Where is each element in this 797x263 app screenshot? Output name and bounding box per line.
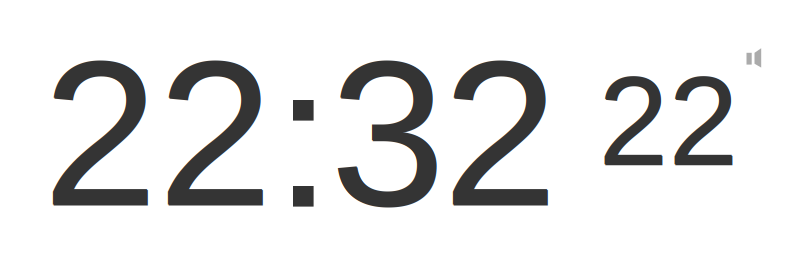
staticText: 2 <box>442 17 557 248</box>
button[interactable]: Sound <box>746 48 761 68</box>
staticText: 22 <box>599 52 739 192</box>
staticText: 22 <box>598 51 738 191</box>
staticText: 2 <box>443 18 558 249</box>
staticText: 22 <box>42 17 272 248</box>
staticText: 3 <box>330 17 445 248</box>
staticText: 3 <box>331 18 446 249</box>
staticText: 22 <box>43 18 273 249</box>
